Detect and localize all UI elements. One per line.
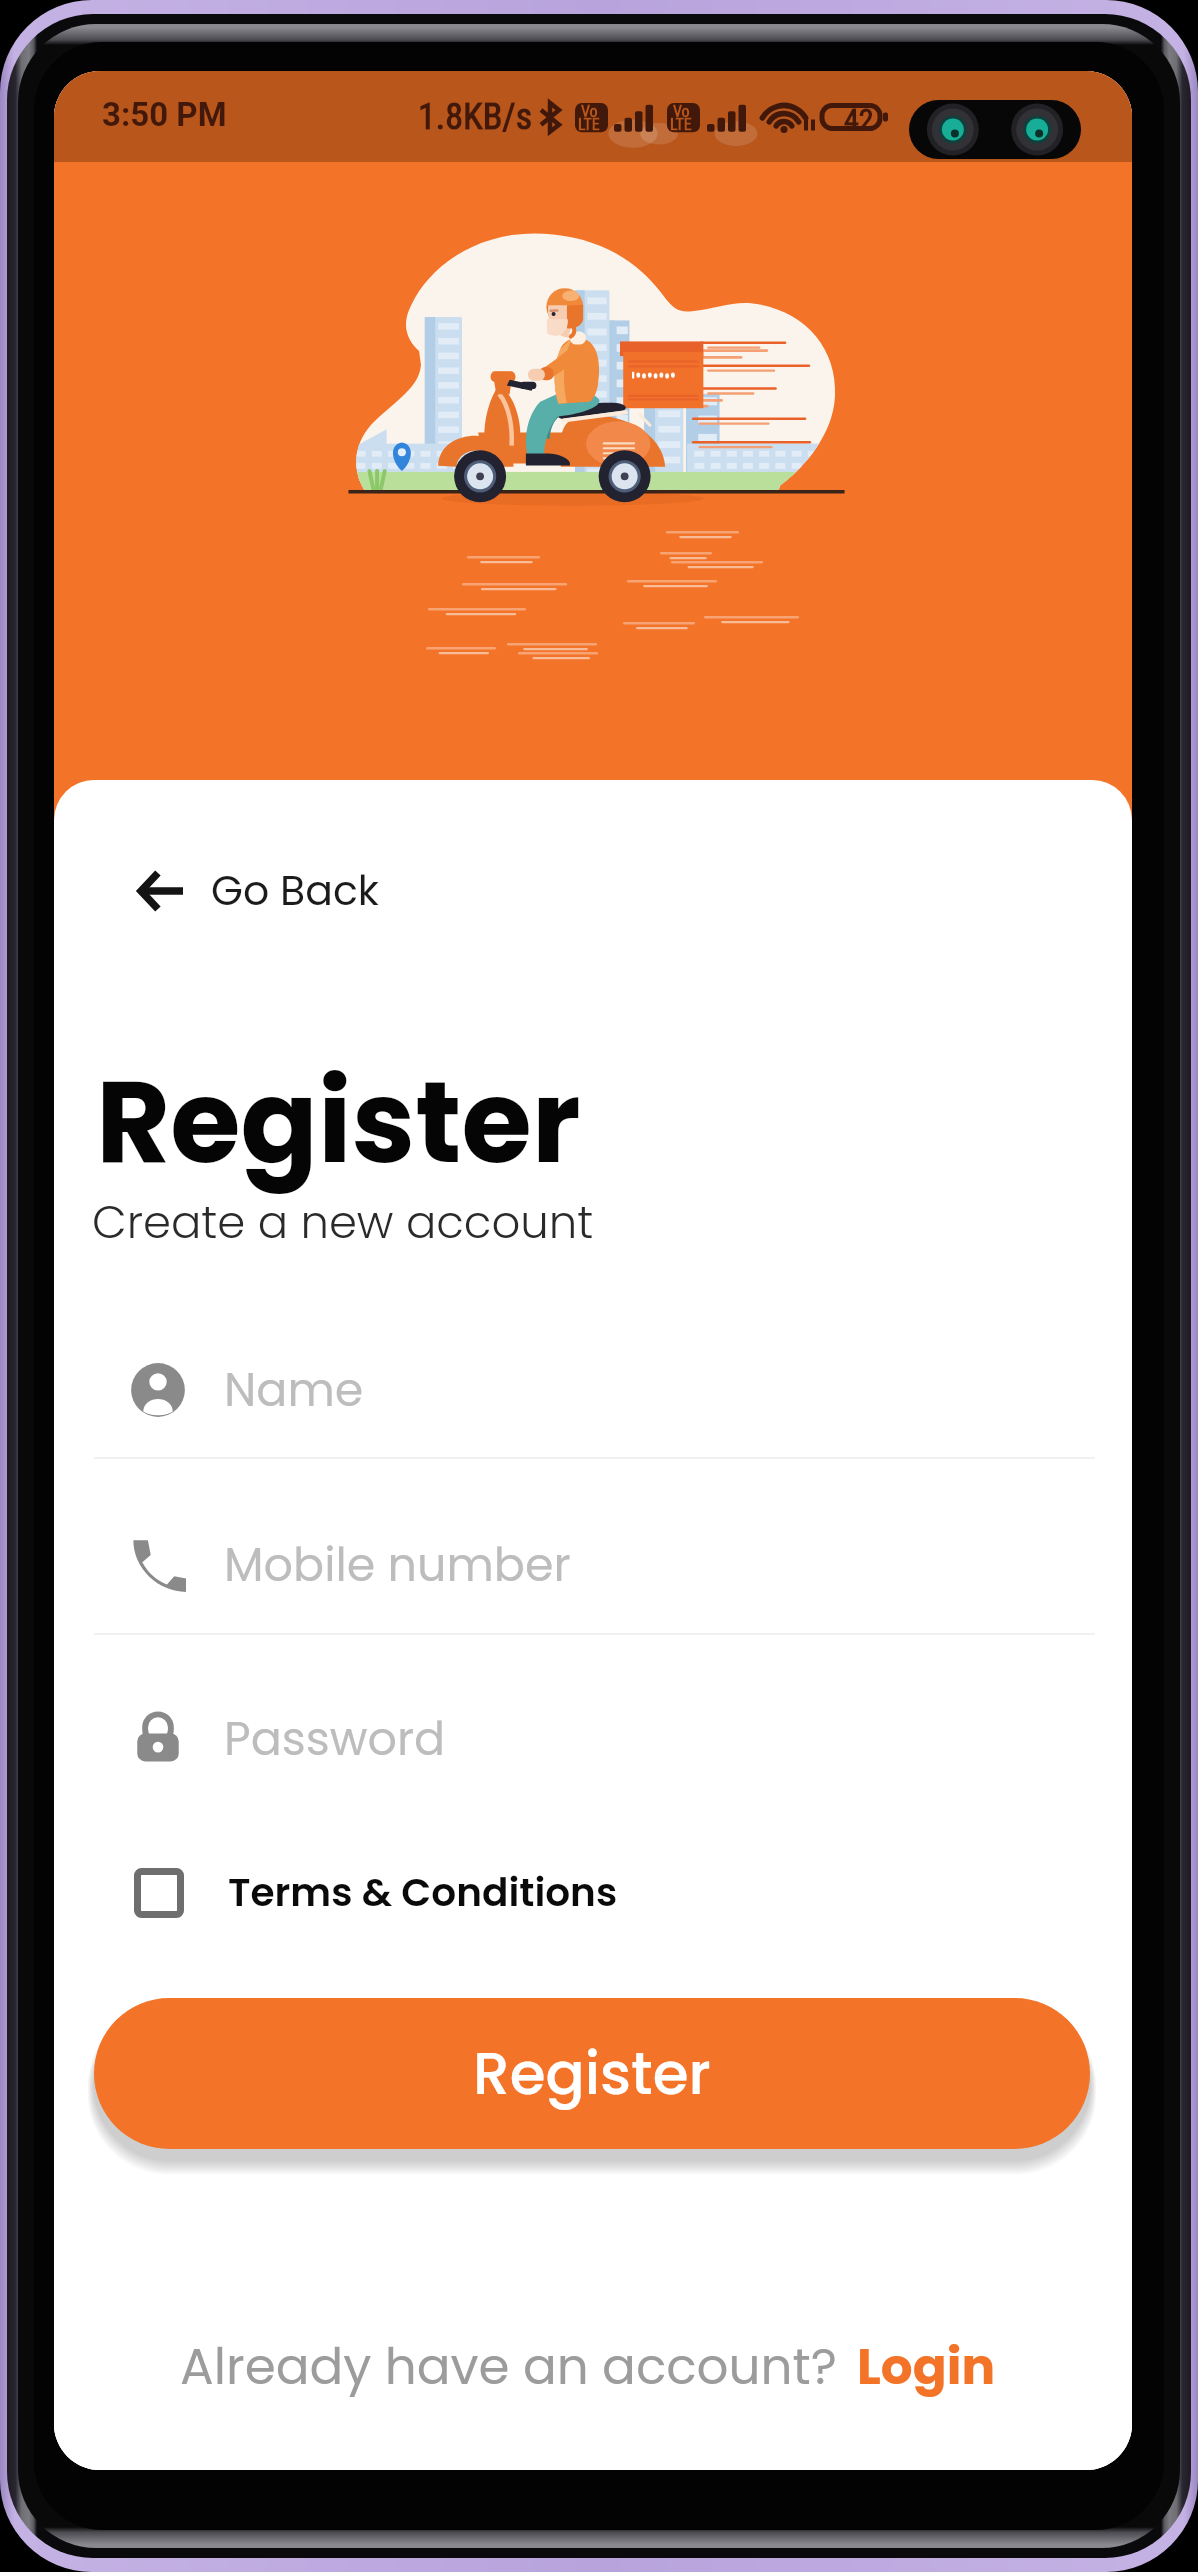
button[interactable]: Register xyxy=(94,1998,1090,2149)
button[interactable]: Login xyxy=(847,2326,1006,2408)
staticText: LTE xyxy=(578,115,600,134)
button[interactable]: Mobile number xyxy=(94,1505,1095,1625)
button[interactable]: Accept terms and conditions xyxy=(96,1847,656,1938)
staticText: Name xyxy=(224,1358,364,1422)
staticText: Vo xyxy=(581,102,598,121)
staticText: Create a new account xyxy=(92,1191,594,1254)
other: Accept terms and conditions xyxy=(134,1868,184,1918)
staticText: 3:50 PM xyxy=(102,95,227,134)
staticText: Password xyxy=(224,1707,446,1771)
staticText: Register xyxy=(96,1042,581,1202)
button[interactable]: Go Back xyxy=(103,840,415,941)
staticText: Already have an account? xyxy=(180,2332,837,2402)
staticText: Go Back xyxy=(211,862,379,919)
staticText: Vo xyxy=(673,102,690,121)
staticText: Mobile number xyxy=(224,1533,571,1597)
staticText: Terms & Conditions xyxy=(228,1865,618,1920)
staticText: Login xyxy=(857,2332,996,2402)
staticText: 1.8KB/s xyxy=(418,96,533,138)
staticText: 42 xyxy=(844,102,874,137)
button[interactable]: Name xyxy=(94,1330,1095,1450)
staticText: LTE xyxy=(670,115,692,134)
staticText: Register xyxy=(473,2033,711,2114)
button[interactable]: Password xyxy=(94,1679,1095,1799)
